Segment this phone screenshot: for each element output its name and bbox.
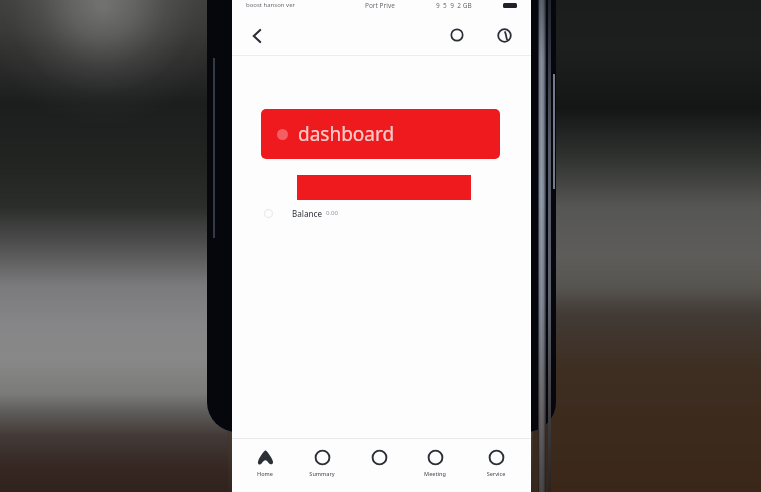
staticText: Home: [238, 470, 292, 477]
button[interactable]: Account: [490, 21, 518, 49]
staticText: Summary: [295, 470, 349, 477]
staticText: Service: [469, 470, 523, 477]
button[interactable]: Search: [443, 21, 471, 49]
button[interactable]: Back: [243, 22, 271, 50]
staticText: Meeting: [408, 470, 462, 477]
staticText: Balance: [292, 208, 323, 219]
button[interactable]: Service: [469, 449, 523, 491]
staticText: boost hanson ver: [246, 1, 296, 9]
button[interactable]: Meeting: [408, 449, 462, 491]
staticText: 0.00: [326, 209, 338, 217]
staticText: dashboard: [298, 121, 395, 147]
staticText: Port Prive: [365, 1, 395, 10]
staticText: 9 5 9 2 GB: [436, 1, 472, 10]
button[interactable]: Summary: [295, 449, 349, 491]
button[interactable]: dashboard: [261, 109, 500, 159]
button[interactable]: Home: [238, 449, 292, 491]
button[interactable]: Scan: [352, 449, 406, 491]
